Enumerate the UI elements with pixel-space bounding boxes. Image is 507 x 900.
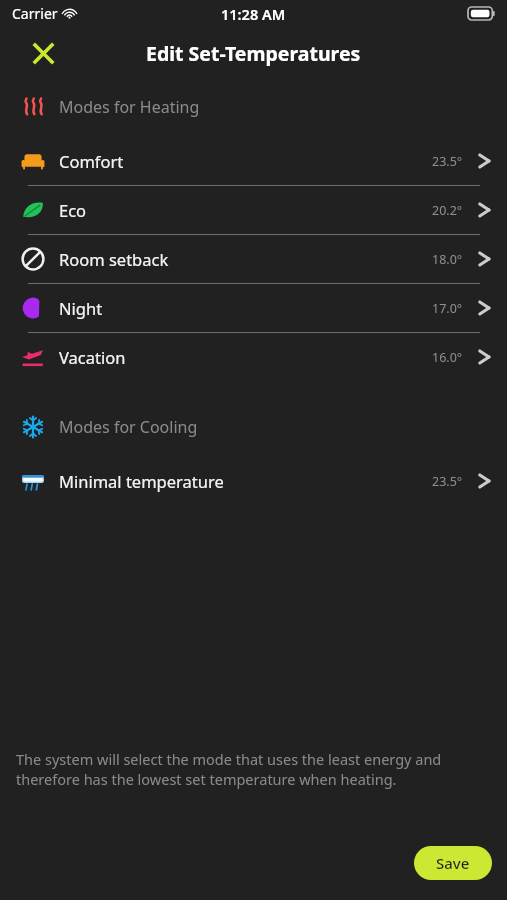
staticText: 16.0° xyxy=(432,349,463,366)
staticText: 17.0° xyxy=(432,300,463,317)
button[interactable]: Minimal temperature xyxy=(0,457,507,505)
button[interactable]: Comfort xyxy=(0,137,507,185)
button[interactable]: Night xyxy=(0,284,507,332)
staticText: Carrier xyxy=(12,4,58,23)
staticText: Comfort xyxy=(59,150,432,172)
staticText: Minimal temperature xyxy=(59,470,432,492)
staticText: 11:28 AM xyxy=(221,4,286,24)
button[interactable]: Close xyxy=(19,29,67,77)
button[interactable]: Vacation xyxy=(0,333,507,381)
staticText: 18.0° xyxy=(432,251,463,268)
staticText: Eco xyxy=(59,199,432,221)
staticText: Modes for Cooling xyxy=(59,416,198,438)
staticText: Modes for Heating xyxy=(59,96,200,118)
staticText: 23.5° xyxy=(432,153,463,170)
staticText: 20.2° xyxy=(432,202,463,219)
staticText: Edit Set-Temperatures xyxy=(146,40,361,67)
staticText: The system will select the mode that use… xyxy=(16,749,481,789)
staticText: Night xyxy=(59,297,432,319)
staticText: Vacation xyxy=(59,346,432,368)
button[interactable]: Room setback xyxy=(0,235,507,283)
staticText: Save xyxy=(436,853,470,873)
staticText: 23.5° xyxy=(432,473,463,490)
button[interactable]: Save xyxy=(414,846,492,880)
staticText: Room setback xyxy=(59,248,432,270)
button[interactable]: Eco xyxy=(0,186,507,234)
